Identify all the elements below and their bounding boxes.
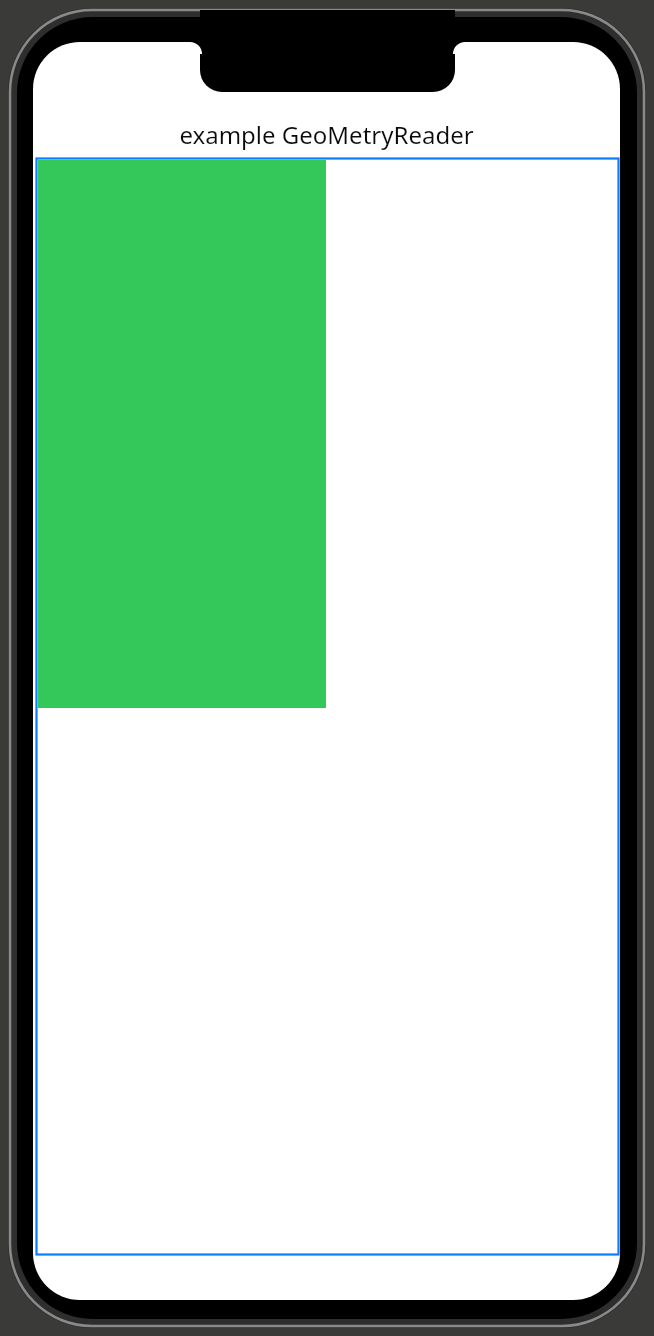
button[interactable]: example GeoMetryReader [33, 114, 620, 154]
staticText: example GeoMetryReader [179, 118, 474, 151]
other: Notch [200, 10, 455, 92]
